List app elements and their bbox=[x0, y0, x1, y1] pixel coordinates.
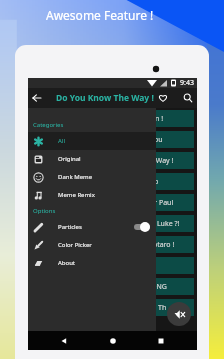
button[interactable]: About bbox=[28, 254, 156, 272]
staticText: b bbox=[154, 177, 159, 187]
staticText: n ! bbox=[155, 114, 164, 124]
staticText: Meme Remix bbox=[58, 191, 95, 199]
staticText: Original bbox=[58, 155, 81, 163]
button[interactable]: Color Picker bbox=[28, 236, 156, 254]
button[interactable]: Mute bbox=[167, 302, 191, 326]
staticText: e Way ! bbox=[150, 156, 174, 166]
button[interactable]: e Way ! bbox=[31, 152, 194, 169]
staticText: or Paul bbox=[150, 198, 174, 208]
staticText: Categories bbox=[33, 121, 64, 129]
staticText: Do You Know The Way ! bbox=[56, 92, 154, 104]
staticText: All bbox=[58, 137, 65, 145]
staticText: About bbox=[58, 259, 76, 267]
button[interactable]: or Paul bbox=[31, 194, 194, 211]
staticText: ou bbox=[154, 135, 163, 145]
button[interactable]: Original bbox=[28, 150, 156, 168]
button[interactable]: Search bbox=[178, 88, 197, 108]
button[interactable]: Back bbox=[51, 331, 77, 350]
button[interactable]: Particles bbox=[28, 218, 156, 236]
button[interactable]: Dank Meme bbox=[28, 168, 156, 186]
button[interactable]: Back bbox=[28, 88, 46, 108]
button[interactable]: Meme Remix bbox=[28, 186, 156, 204]
staticText: ONG bbox=[151, 282, 167, 292]
staticText: Options bbox=[33, 207, 56, 215]
button[interactable]: Home bbox=[100, 331, 126, 350]
staticText: Color Picker bbox=[58, 241, 92, 249]
staticText: Jotaro ! bbox=[151, 240, 175, 250]
staticText: Particles bbox=[58, 223, 82, 231]
button[interactable]: ONG bbox=[31, 278, 194, 295]
staticText: Dank Meme bbox=[58, 173, 93, 181]
button[interactable] bbox=[31, 257, 194, 274]
button[interactable]: All bbox=[28, 132, 156, 150]
staticText: or Luke ?! bbox=[148, 219, 180, 229]
button[interactable]: ou bbox=[31, 131, 194, 148]
button[interactable]: b bbox=[31, 173, 194, 190]
staticText: Awesome Feature ! bbox=[46, 7, 154, 23]
button[interactable]: n ! bbox=[31, 110, 194, 127]
button[interactable]: Favourites bbox=[154, 88, 172, 108]
button[interactable]: Recent apps bbox=[148, 331, 174, 350]
staticText: p Th bbox=[152, 303, 167, 313]
button[interactable]: or Luke ?! bbox=[31, 215, 194, 232]
button[interactable]: Toggle particles bbox=[131, 221, 153, 233]
button[interactable]: Jotaro ! bbox=[31, 236, 194, 253]
staticText: 9:43 bbox=[180, 78, 194, 88]
button[interactable]: p Th bbox=[31, 299, 194, 316]
